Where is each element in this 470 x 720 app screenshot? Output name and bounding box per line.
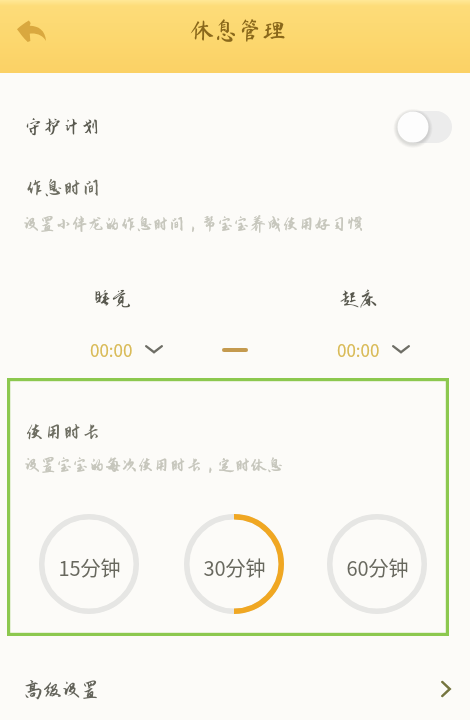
staticText: 设置宝宝的每次使用时长，定时休息: [24, 456, 284, 474]
staticText: 00:00: [90, 337, 133, 362]
button[interactable]: 00:00: [62, 336, 162, 362]
button[interactable]: 30分钟: [184, 514, 284, 614]
staticText: 作息时间: [25, 178, 101, 199]
staticText: 使用时长: [25, 422, 101, 443]
staticText: 15分钟: [58, 553, 121, 582]
button[interactable]: 高级设置: [0, 660, 470, 720]
button[interactable]: Back: [3, 3, 59, 59]
staticText: 起床: [340, 289, 378, 310]
button[interactable]: 守护计划: [0, 98, 470, 156]
staticText: 60分钟: [346, 553, 409, 582]
staticText: 高级设置: [24, 680, 100, 701]
staticText: 守护计划: [24, 117, 100, 138]
button[interactable]: 60分钟: [327, 514, 427, 614]
button[interactable]: Toggle guardian plan: [395, 110, 452, 144]
button[interactable]: 15分钟: [39, 514, 139, 614]
staticText: 设置小伴龙的作息时间，帮宝宝养成使用好习惯: [23, 215, 364, 233]
staticText: 30分钟: [203, 553, 266, 582]
button[interactable]: 00:00: [309, 336, 409, 362]
staticText: 睡觉: [93, 289, 131, 310]
staticText: 00:00: [337, 337, 380, 362]
staticText: 休息管理: [190, 18, 286, 42]
